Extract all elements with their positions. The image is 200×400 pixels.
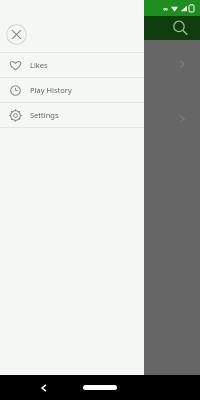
button[interactable]: Close drawer — [6, 24, 27, 45]
staticText: ∞ — [163, 5, 168, 12]
staticText: Play History — [30, 85, 72, 95]
button[interactable]: Back — [36, 380, 52, 396]
button[interactable]: Search — [170, 18, 190, 38]
staticText: Likes — [30, 60, 48, 70]
button[interactable]: Settings — [0, 103, 144, 127]
button[interactable]: Home — [83, 385, 117, 390]
button[interactable]: Play History — [0, 78, 144, 102]
staticText: Settings — [30, 110, 59, 120]
button[interactable]: Likes — [0, 53, 144, 77]
